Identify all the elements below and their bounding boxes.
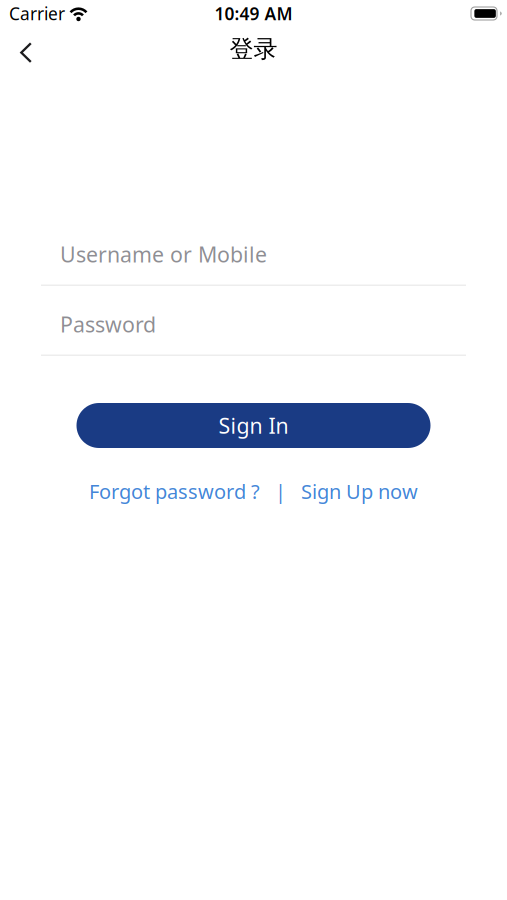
staticText: 登录	[229, 34, 277, 64]
staticText: Forgot password ?	[89, 478, 260, 505]
button[interactable]: Sign In	[76, 403, 430, 448]
staticText: Sign In	[218, 411, 288, 440]
staticText: Carrier	[9, 2, 65, 25]
button[interactable]: Sign Up now	[301, 478, 418, 505]
textField[interactable]: Username or Mobile	[60, 240, 466, 268]
secureTextField[interactable]: Password	[60, 310, 466, 338]
staticText: Sign Up now	[301, 478, 418, 505]
button[interactable]: Forgot password ?	[89, 478, 260, 505]
staticText: Password	[60, 310, 156, 338]
staticText: 10:49 AM	[214, 2, 292, 25]
staticText: |	[275, 478, 286, 505]
button[interactable]: Back	[0, 27, 50, 71]
staticText: Username or Mobile	[60, 240, 267, 268]
